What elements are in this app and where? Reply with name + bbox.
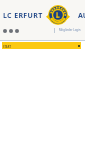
button[interactable]: Mitglieder Login bbox=[59, 28, 81, 32]
button[interactable]: LC ERFURT bbox=[3, 11, 43, 21]
button[interactable]: Social link bbox=[9, 29, 13, 33]
staticText: AU bbox=[78, 11, 85, 21]
button[interactable]: Social link bbox=[3, 29, 7, 33]
staticText: START bbox=[3, 45, 11, 49]
button[interactable]: Lions Club International logo bbox=[46, 5, 70, 25]
button[interactable]: Menu bbox=[77, 44, 80, 47]
button[interactable]: Social link bbox=[15, 29, 19, 33]
button[interactable]: START bbox=[3, 45, 11, 49]
staticText: LC ERFURT bbox=[3, 11, 43, 21]
staticText: Mitglieder Login bbox=[59, 28, 81, 32]
